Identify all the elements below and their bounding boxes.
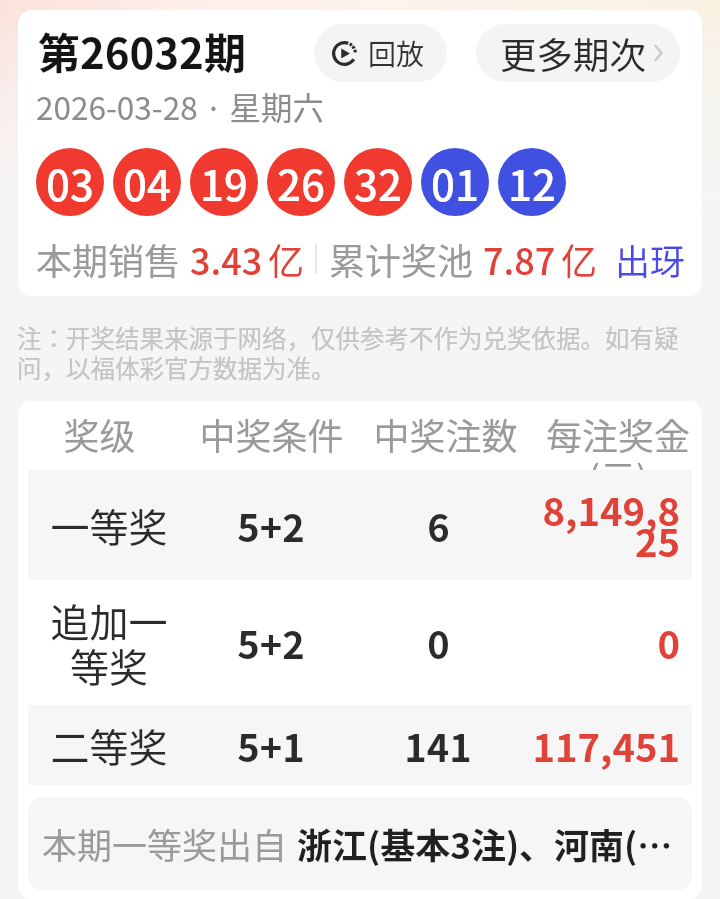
staticText: 亿 [561,233,598,285]
button[interactable]: 更多期次 [476,24,680,82]
staticText: 01 [431,152,479,213]
staticText: 3.43 [190,233,263,285]
staticText: 亿 [268,233,305,285]
staticText: 每注奖金(元) [534,408,702,470]
staticText: 一等奖 [50,497,168,553]
staticText: 5+2 [237,615,305,670]
button[interactable]: 追加一等奖 [28,580,692,705]
staticText: 追加一等奖 [46,592,172,693]
staticText: 141 [404,718,472,773]
staticText: 32 [354,152,402,213]
staticText: 本期销售 [36,233,181,285]
staticText: 本期一等奖出自 [42,818,288,869]
staticText: 6 [427,498,450,553]
staticText: 中奖注数 [373,408,518,460]
staticText: 5+1 [237,718,305,773]
staticText: 12 [508,152,556,213]
staticText: 19 [200,152,248,213]
staticText: 03 [46,152,94,213]
staticText: 二等奖 [50,717,168,773]
staticText: 浙江(基本3注)、河南(上海3注) [297,818,678,869]
staticText: 7.87 [483,233,556,285]
staticText: 中奖条件 [199,408,344,460]
staticText: 04 [123,152,171,213]
button[interactable]: 回放 [314,24,447,82]
staticText: 5+2 [237,498,305,553]
staticText: 8,149,825 [524,482,680,568]
button[interactable]: 二等奖 [28,705,692,785]
staticText: 26 [277,152,325,213]
staticText: 注：开奖结果来源于网络，仅供参考不作为兑奖依据。如有疑问，以福体彩官方数据为准。 [17,320,702,385]
staticText: 更多期次 [500,27,646,80]
staticText: 2026-03-28 · 星期六 [36,83,325,129]
staticText: 0 [427,615,450,670]
button[interactable]: 本期一等奖出自 [28,797,692,890]
other: 回放 [332,41,357,66]
button[interactable]: 一等奖 [28,470,692,580]
staticText: 回放 [368,33,425,74]
staticText: 累计奖池 [329,233,474,285]
staticText: 0 [657,615,680,670]
button[interactable]: 出玡 [615,234,686,285]
staticText: 奖级 [63,408,136,460]
staticText: 117,451 [532,718,680,773]
staticText: 第26032期 [38,20,246,81]
